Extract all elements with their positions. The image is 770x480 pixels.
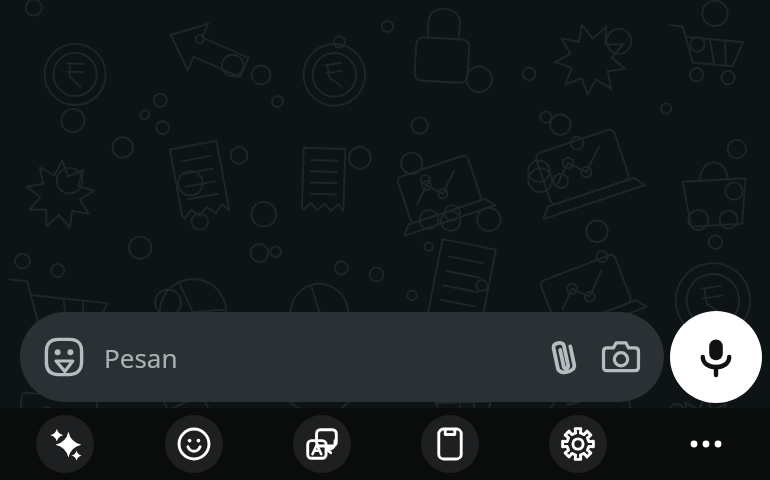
- staticText: Pesan: [104, 340, 538, 375]
- button[interactable]: Settings: [514, 408, 642, 480]
- button[interactable]: Stickers: [20, 312, 664, 402]
- button[interactable]: Stickers: [42, 335, 86, 379]
- button[interactable]: Attach: [538, 331, 590, 383]
- button[interactable]: Voice message: [670, 311, 762, 403]
- button[interactable]: Meta AI: [0, 408, 129, 480]
- button[interactable]: Emoji: [129, 408, 258, 480]
- button[interactable]: Camera: [600, 331, 642, 383]
- button[interactable]: More options: [642, 408, 770, 480]
- button[interactable]: Translate: [258, 408, 386, 480]
- button[interactable]: Clipboard: [386, 408, 514, 480]
